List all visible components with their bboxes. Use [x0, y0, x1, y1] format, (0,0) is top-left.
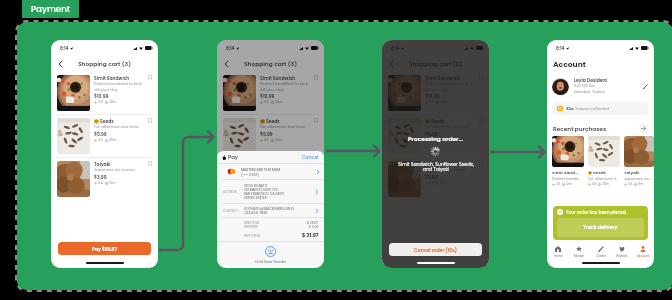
- staticText: 324: [566, 106, 574, 112]
- button[interactable]: Cancel: [302, 154, 319, 160]
- staticText: 20m: [275, 138, 283, 143]
- staticText: Hold Near Reader: [255, 259, 287, 264]
- staticText: 15m: [440, 181, 447, 186]
- staticText: 4.4: [98, 181, 103, 186]
- staticText: MASTERCARD PLATINUM: [241, 167, 281, 172]
- button[interactable]: Seeds: [388, 115, 485, 157]
- staticText: Simit Sandwich: [260, 75, 296, 81]
- staticText: Perfect breakfast to kick off your day: [94, 81, 142, 92]
- button[interactable]: See all purchases: [639, 124, 648, 133]
- staticText: ADDRESS: [223, 190, 244, 194]
- staticText: Perfect breakfast to kick off your day: [425, 81, 473, 92]
- button[interactable]: CONTACT: [223, 204, 318, 217]
- button[interactable]: Simit Sand...: [552, 136, 584, 186]
- staticText: 8:14: [556, 45, 565, 51]
- staticText: For afternoon tea time: [94, 124, 139, 130]
- button[interactable]: Edit profile: [641, 82, 649, 90]
- staticText: Shopping cart (3): [409, 60, 463, 68]
- staticText: Taiyaki: [94, 161, 111, 167]
- staticText: 5.0: [264, 100, 269, 105]
- staticText: CONTACT: [223, 209, 244, 213]
- staticText: Seeds: [266, 118, 280, 124]
- staticText: 30m: [275, 100, 283, 105]
- staticText: Japanese ice...: [624, 176, 652, 181]
- button[interactable]: Taiyaki: [223, 158, 320, 200]
- button[interactable]: Leyla Desidero: [552, 76, 649, 96]
- button[interactable]: Back: [55, 59, 65, 69]
- button[interactable]: Simit Sandwich: [223, 72, 320, 114]
- button[interactable]: 324: [553, 102, 648, 115]
- staticText: Japanese ice cream: [260, 167, 302, 173]
- staticText: Pay $20.87: [92, 246, 118, 252]
- staticText: 4.6: [429, 138, 434, 143]
- button[interactable]: Taiyaki: [57, 158, 154, 200]
- button[interactable]: Seeds: [57, 115, 154, 157]
- staticText: Simit Sand...: [552, 170, 579, 176]
- button[interactable]: Taiyaki: [388, 158, 485, 200]
- staticText: 20m: [440, 138, 448, 143]
- button[interactable]: MASTERCARD PLATINUM: [222, 164, 319, 179]
- button[interactable]: Simit Sandwich: [57, 72, 154, 114]
- staticText: S.DONATO@SNACKSHERFLOW.IO (123)456-7890: [244, 207, 316, 215]
- button[interactable]: Back: [221, 59, 231, 69]
- button[interactable]: Wishlist: [612, 244, 632, 259]
- button[interactable]: Bookmark: [146, 75, 154, 80]
- staticText: Pay: [228, 153, 238, 161]
- staticText: 8m: [638, 182, 644, 186]
- staticText: Perfect breakfast to kick off your day: [260, 81, 308, 92]
- button[interactable]: Home: [548, 244, 568, 259]
- staticText: 4.4: [429, 181, 434, 186]
- staticText: 4.6: [592, 182, 597, 186]
- button[interactable]: Bookmark: [312, 161, 320, 166]
- staticText: 8:14: [226, 45, 235, 51]
- button[interactable]: Cancel order (10s): [389, 243, 482, 256]
- button[interactable]: Bookmark: [146, 118, 154, 123]
- staticText: SUBTOTAL: [244, 221, 263, 225]
- button[interactable]: Account: [633, 244, 653, 259]
- staticText: $ 26.97: [307, 221, 319, 225]
- button[interactable]: Market: [569, 244, 589, 259]
- staticText: 12m: [566, 182, 572, 186]
- staticText: Wishlist: [616, 254, 628, 258]
- staticText: 5.0: [429, 100, 434, 105]
- staticText: Shopping cart (3): [244, 60, 298, 68]
- staticText: $3.99: [260, 174, 273, 180]
- staticText: 4.6: [98, 138, 103, 143]
- staticText: Japanese ice cream: [425, 167, 467, 173]
- button[interactable]: ADDRESS: [223, 180, 318, 203]
- staticText: PAY TOTAL: [244, 234, 263, 238]
- staticText: Create: [596, 254, 607, 258]
- button[interactable]: Taiyaki: [624, 136, 654, 186]
- staticText: Shopping cart (3): [78, 60, 132, 68]
- button[interactable]: Bookmark: [146, 161, 154, 166]
- button[interactable]: Bookmark: [312, 118, 320, 123]
- staticText: Processing order...: [408, 135, 463, 143]
- staticText: Taiyaki: [260, 161, 277, 167]
- staticText: Seeds: [431, 118, 445, 124]
- staticText: Your order has been placed.: [566, 209, 627, 215]
- button[interactable]: Bookmark: [312, 75, 320, 80]
- button[interactable]: Seeds: [588, 136, 620, 186]
- staticText: $10.99: [94, 93, 109, 99]
- button[interactable]: Payment: [22, 0, 79, 18]
- button[interactable]: Seeds: [223, 115, 320, 157]
- button[interactable]: Back: [386, 59, 396, 69]
- staticText: $3.99: [94, 174, 107, 180]
- button[interactable]: Pay $20.87: [58, 242, 151, 255]
- button[interactable]: Track delivery: [557, 218, 644, 237]
- staticText: 30m: [109, 100, 117, 105]
- staticText: Account: [637, 254, 650, 258]
- staticText: Simit Sandwich: [425, 75, 461, 81]
- staticText: Taiyaki: [425, 161, 442, 167]
- staticText: Cancel order (10s): [414, 247, 457, 253]
- staticText: $ 5.00: [309, 225, 319, 229]
- staticText: 5'4" 126 lbs: [574, 83, 595, 89]
- staticText: 20m: [602, 182, 609, 186]
- button[interactable]: Create: [591, 244, 611, 259]
- button[interactable]: Simit Sandwich: [388, 72, 485, 114]
- staticText: $3.99: [425, 174, 438, 180]
